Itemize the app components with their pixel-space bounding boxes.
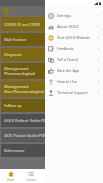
staticText: GOLD Patient Guide PDF	[4, 118, 49, 123]
staticText: How to Use	[57, 79, 97, 84]
staticText: Feedback	[57, 46, 97, 51]
button[interactable]: Management Non-Pharmacological	[1, 81, 102, 97]
button[interactable]: References	[1, 144, 102, 157]
button[interactable]: Feedback	[45, 43, 103, 54]
staticText: Home	[7, 178, 15, 182]
staticText: Content	[26, 178, 36, 182]
staticText: Technical Support	[57, 90, 97, 95]
staticText: Rate the App	[57, 68, 97, 73]
staticText: Management Non-Pharmacological	[4, 84, 44, 94]
staticText: 2021 Pocket Guide PDF	[4, 133, 46, 138]
button[interactable]: Content	[22, 169, 40, 183]
button[interactable]: Rate the App	[45, 65, 103, 76]
button[interactable]: GOLD Patient Guide PDF	[1, 114, 102, 127]
button[interactable]: Open navigation drawer	[3, 8, 9, 14]
staticText: Management Pharmacological	[4, 66, 35, 76]
staticText: Follow up	[4, 103, 22, 108]
staticText: COVID-19 and COPD	[4, 22, 41, 27]
button[interactable]: COVID-19 and COPD	[1, 17, 102, 31]
button[interactable]: Settings	[45, 10, 103, 21]
staticText: About GOLD	[57, 24, 97, 29]
button[interactable]: Management Pharmacological	[1, 63, 102, 79]
button[interactable]: Technical Support	[45, 87, 103, 98]
button[interactable]: Follow up	[1, 99, 102, 112]
button[interactable]: Diagnosis	[1, 48, 102, 61]
staticText: Risk Factors	[4, 37, 27, 42]
button[interactable]: Risk Factors	[1, 33, 102, 46]
staticText: Diagnosis	[4, 52, 22, 57]
staticText: Tell a Friend	[57, 57, 97, 62]
button[interactable]: Visit GOLD Website	[45, 32, 103, 43]
button[interactable]: Home	[2, 169, 20, 183]
button[interactable]: Tell a Friend	[45, 54, 103, 65]
staticText: Settings	[57, 13, 97, 18]
button[interactable]: How to Use	[45, 76, 103, 87]
button[interactable]: 2021 Pocket Guide PDF	[1, 129, 102, 142]
button[interactable]: About GOLD	[45, 21, 103, 32]
staticText: References	[4, 148, 25, 153]
staticText: Visit GOLD Website	[57, 35, 97, 40]
